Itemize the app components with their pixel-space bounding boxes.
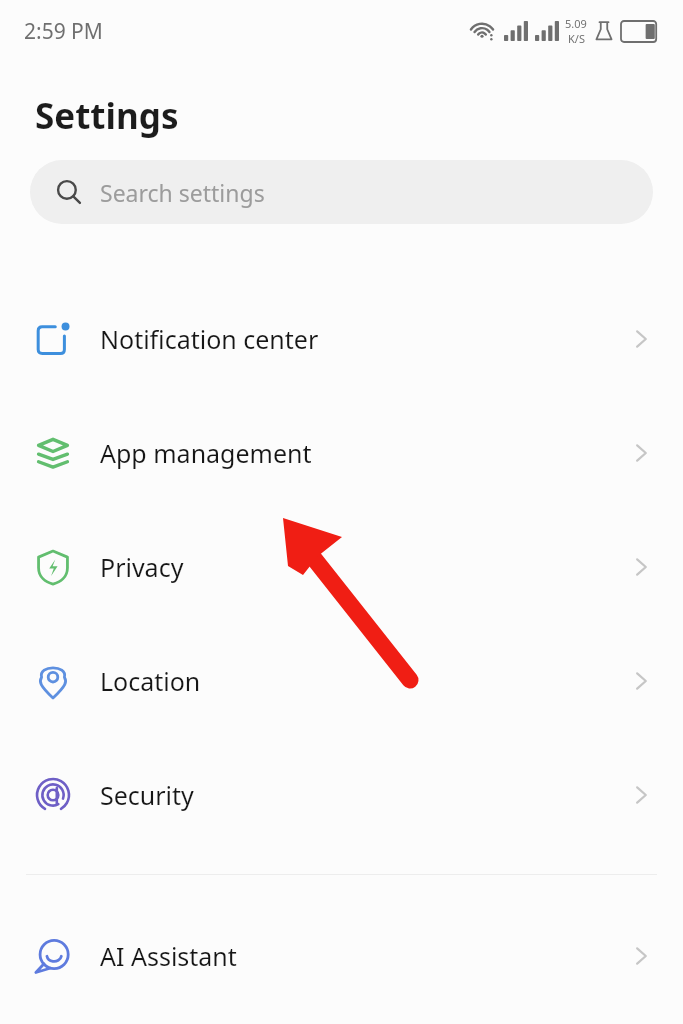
staticText: K/S <box>568 31 585 46</box>
button[interactable]: Location <box>0 624 683 738</box>
staticText: Security <box>100 778 629 812</box>
staticText: 5.09 <box>565 16 587 31</box>
button[interactable]: Security <box>0 738 683 852</box>
staticText: Privacy <box>100 550 629 584</box>
button[interactable]: Privacy <box>0 510 683 624</box>
staticText: 2:59 PM <box>24 17 103 46</box>
staticText: Search settings <box>100 177 265 208</box>
staticText: AI Assistant <box>100 939 629 973</box>
staticText: Notification center <box>100 322 629 356</box>
button[interactable]: Notification center <box>0 282 683 396</box>
button[interactable]: AI Assistant <box>0 899 683 1013</box>
button[interactable]: App management <box>0 396 683 510</box>
button[interactable]: Search settings <box>30 160 653 224</box>
staticText: Location <box>100 664 629 698</box>
staticText: Settings <box>35 92 179 140</box>
staticText: App management <box>100 436 629 470</box>
